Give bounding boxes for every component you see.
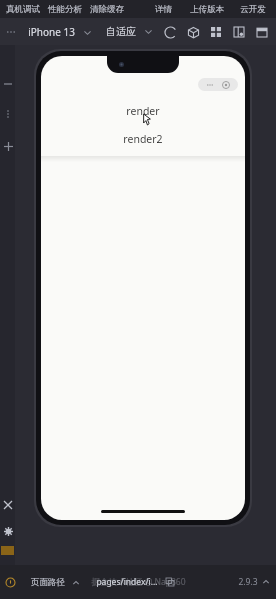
button[interactable]: 自适应 xyxy=(106,25,153,38)
button[interactable]: Refresh xyxy=(163,25,177,39)
button[interactable]: Status xyxy=(4,576,17,589)
staticText: 清除缓存 xyxy=(90,4,124,15)
staticText: iPhone 13 xyxy=(28,25,75,39)
button[interactable]: Copy path xyxy=(164,576,176,588)
button[interactable]: Close xyxy=(1,498,15,512)
button[interactable]: More options xyxy=(1,107,15,121)
staticText: pages/index/i... xyxy=(96,576,158,588)
staticText: 掘金技术社区 @ Nap860 xyxy=(91,576,186,588)
button[interactable]: render2 xyxy=(41,132,245,146)
button[interactable]: More xyxy=(4,25,18,39)
button[interactable]: Layout grid xyxy=(209,25,223,39)
button[interactable]: Settings xyxy=(1,524,15,538)
button[interactable]: 云开发 xyxy=(236,3,270,16)
button[interactable]: Collapse xyxy=(1,77,15,91)
button[interactable]: Debugger xyxy=(232,25,246,39)
button[interactable]: Preview xyxy=(186,25,200,39)
button[interactable]: 上传版本 xyxy=(186,3,228,16)
button[interactable]: render xyxy=(41,104,245,118)
button[interactable]: iPhone 13 xyxy=(28,25,92,39)
button[interactable]: pages/index/i... xyxy=(96,576,158,588)
staticText: render2 xyxy=(123,132,163,146)
staticText: 性能分析 xyxy=(48,4,82,15)
staticText: 云开发 xyxy=(240,4,266,15)
button[interactable]: 性能分析 xyxy=(44,3,86,16)
staticText: 自适应 xyxy=(106,25,136,38)
staticText: render xyxy=(126,104,160,118)
button[interactable]: 清除缓存 xyxy=(86,3,128,16)
staticText: 页面路径 xyxy=(31,577,65,588)
staticText: 真机调试 xyxy=(6,4,40,15)
staticText: 上传版本 xyxy=(190,4,224,15)
button[interactable]: 页面路径 xyxy=(31,577,80,588)
staticText: 详情 xyxy=(155,4,172,15)
button[interactable]: Add xyxy=(1,139,15,153)
button[interactable]: Panels xyxy=(255,25,269,39)
button[interactable]: 真机调试 xyxy=(2,3,44,16)
button[interactable]: Menu and close xyxy=(198,78,238,91)
staticText: 2.9.3 xyxy=(238,576,258,588)
button[interactable]: 详情 xyxy=(151,3,176,16)
